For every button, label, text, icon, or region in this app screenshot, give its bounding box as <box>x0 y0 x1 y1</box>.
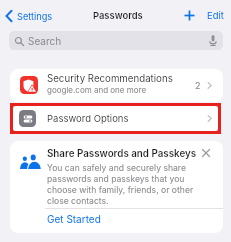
button[interactable]: Get Started <box>10 208 223 229</box>
staticText: Passwords <box>93 10 143 21</box>
button[interactable]: Security Recommendations <box>10 69 223 102</box>
staticText: 2 <box>195 80 201 91</box>
staticText: Search <box>28 35 62 47</box>
staticText: Share Passwords and Passkeys <box>47 148 197 160</box>
staticText: Get Started <box>47 213 101 225</box>
button[interactable]: Add password <box>182 8 196 22</box>
staticText: Settings <box>17 11 53 22</box>
staticText: Security Recommendations <box>47 73 173 85</box>
staticText: google.com and one more <box>47 85 147 95</box>
button[interactable]: Search <box>9 31 223 50</box>
button[interactable]: Password Options <box>13 106 218 131</box>
staticText: Edit <box>207 10 224 21</box>
button[interactable]: Dismiss <box>199 146 213 160</box>
staticText: Password Options <box>47 113 129 124</box>
staticText: You can safely and securely share passwo… <box>47 163 215 206</box>
button[interactable]: Edit <box>207 10 224 21</box>
button[interactable]: Settings <box>5 8 53 24</box>
